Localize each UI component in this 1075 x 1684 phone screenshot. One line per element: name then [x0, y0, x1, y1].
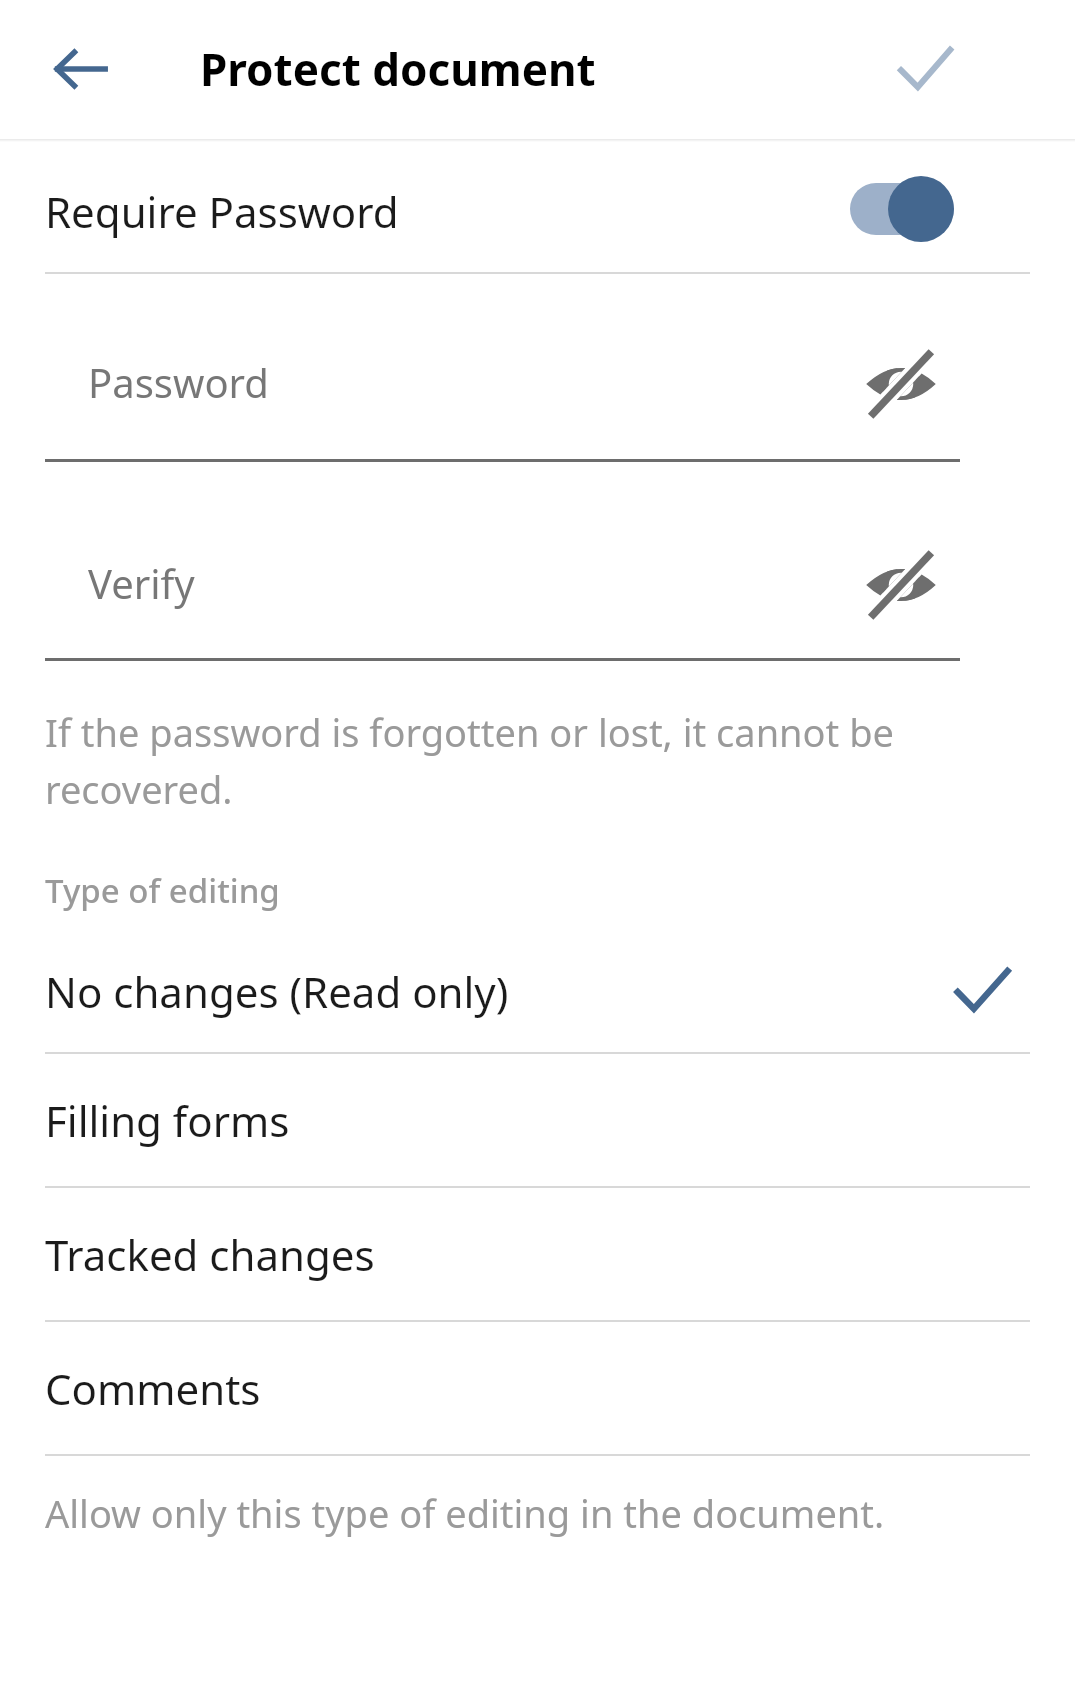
button[interactable]: Tracked changes [0, 1189, 1075, 1320]
staticText: Protect document [200, 39, 596, 99]
staticText: Tracked changes [45, 1226, 375, 1283]
staticText: Allow only this type of editing in the d… [45, 1487, 885, 1539]
button[interactable] [0, 300, 1075, 490]
button[interactable]: Require Password toggle [836, 176, 968, 242]
button[interactable]: Show password [858, 546, 944, 624]
button[interactable]: No changes (Read only) [0, 930, 1075, 1053]
button[interactable] [0, 500, 1075, 690]
button[interactable] [0, 143, 1075, 273]
button[interactable]: Show password [858, 345, 944, 423]
staticText: No changes (Read only) [45, 963, 509, 1020]
staticText: Verify [88, 556, 195, 610]
button[interactable]: Filling forms [0, 1055, 1075, 1186]
staticText: Require Password [45, 183, 399, 240]
staticText: recovered. [45, 763, 233, 815]
button[interactable]: Back [34, 23, 126, 115]
staticText: Filling forms [45, 1092, 290, 1149]
staticText: If the password is forgotten or lost, it… [45, 706, 894, 758]
staticText: Comments [45, 1360, 261, 1417]
button[interactable]: Comments [0, 1323, 1075, 1454]
staticText: Password [88, 355, 269, 409]
staticText: Type of editing [45, 868, 280, 913]
button[interactable]: Apply [878, 23, 972, 115]
